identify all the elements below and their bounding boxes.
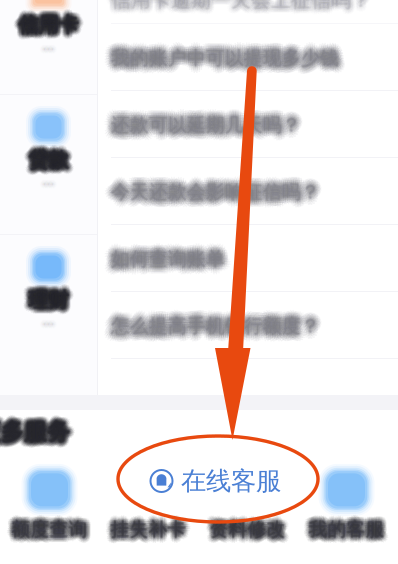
staticText: 我的客服 <box>312 517 388 540</box>
staticText: ··· <box>44 175 56 193</box>
button[interactable]: 挂失补卡 <box>99 468 198 541</box>
staticText: 信用卡逾期一天会上征信吗？ <box>114 0 374 13</box>
button[interactable]: 如何查询账单 <box>98 225 398 292</box>
staticText: 我的账户中可以提现多少钱 <box>113 41 341 64</box>
staticText: 资料修改 <box>215 517 291 540</box>
staticText: 我的账户中可以提现多少钱 <box>109 41 337 64</box>
staticText: 理财 <box>28 288 68 313</box>
button[interactable]: 在线客服 <box>128 457 302 505</box>
staticText: 额度查询 <box>11 514 87 537</box>
staticText: 如何查询账单 <box>107 253 221 276</box>
staticText: 信用卡 <box>19 18 79 42</box>
button[interactable]: 还款可以延期几天吗？ <box>98 91 398 158</box>
staticText: 贷款 <box>25 147 65 172</box>
staticText: 资料修改 <box>207 515 283 538</box>
button[interactable]: 额度查询 <box>0 468 99 541</box>
staticText: 怎么提高手机银行额度？ <box>112 313 321 336</box>
staticText: 我的客服 <box>308 516 384 539</box>
staticText: 信用卡逾期一天会上征信吗？ <box>115 0 375 11</box>
staticText: 我的客服 <box>305 519 381 542</box>
button[interactable]: 我的账户中可以提现多少钱 <box>98 24 398 91</box>
staticText: ··· <box>42 40 54 58</box>
staticText: 资料修改 <box>214 521 290 544</box>
staticText: 更多服务 <box>0 421 67 449</box>
staticText: 今天还款会影响征信吗？ <box>109 178 318 201</box>
staticText: 资料修改 <box>208 515 284 538</box>
staticText: 我的账户中可以提现多少钱 <box>108 44 336 67</box>
staticText: 挂失补卡 <box>112 515 188 538</box>
staticText: 资料修改 <box>209 515 285 538</box>
staticText: 如何查询账单 <box>118 249 232 272</box>
staticText: 怎么提高手机银行额度？ <box>112 314 321 337</box>
staticText: 理财 <box>28 286 68 311</box>
staticText: 额度查询 <box>7 515 83 538</box>
button[interactable]: 资料修改 <box>198 468 297 541</box>
staticText: 我的账户中可以提现多少钱 <box>110 45 338 68</box>
staticText: 如何查询账单 <box>107 248 221 271</box>
staticText: 如何查询账单 <box>107 242 221 265</box>
staticText: 资料修改 <box>212 516 288 539</box>
button[interactable]: 我的客服 <box>297 468 396 541</box>
button[interactable]: 信用卡 <box>0 0 97 94</box>
staticText: 还款可以延期几天吗？ <box>110 115 300 138</box>
staticText: 还款可以延期几天吗？ <box>117 117 307 140</box>
staticText: 理财 <box>31 288 71 312</box>
staticText: 如何查询账单 <box>112 247 226 270</box>
staticText: 挂失补卡 <box>108 522 184 545</box>
staticText: 额度查询 <box>8 519 84 542</box>
staticText: 额度查询 <box>13 519 89 542</box>
staticText: 怎么提高手机银行额度？ <box>113 314 322 337</box>
staticText: 怎么提高手机银行额度？ <box>113 316 322 339</box>
staticText: ··· <box>44 176 56 194</box>
staticText: 挂失补卡 <box>113 518 189 541</box>
staticText: ··· <box>45 39 57 56</box>
staticText: 贷款 <box>28 147 68 171</box>
staticText: ··· <box>39 39 51 57</box>
staticText: ··· <box>45 41 57 59</box>
staticText: 我的账户中可以提现多少钱 <box>115 43 343 66</box>
button[interactable]: 理财 <box>0 235 97 374</box>
staticText: 我的账户中可以提现多少钱 <box>107 41 335 64</box>
staticText: 我的账户中可以提现多少钱 <box>109 50 337 73</box>
button[interactable]: 信用卡逾期一天会上征信吗？ <box>98 0 398 24</box>
staticText: ··· <box>42 175 54 192</box>
staticText: 我的账户中可以提现多少钱 <box>110 53 338 76</box>
staticText: 我的客服 <box>314 517 390 540</box>
staticText: 资料修改 <box>209 516 285 538</box>
staticText: ··· <box>42 175 54 192</box>
staticText: ··· <box>44 172 56 190</box>
staticText: 资料修改 <box>206 519 282 541</box>
staticText: 还款可以延期几天吗？ <box>109 113 299 136</box>
staticText: 如何查询账单 <box>108 249 222 272</box>
button[interactable]: 今天还款会影响征信吗？ <box>98 158 398 225</box>
staticText: 我的客服 <box>313 515 389 538</box>
staticText: ··· <box>44 314 56 332</box>
staticText: 信用卡 <box>21 8 81 33</box>
staticText: 贷款 <box>28 146 68 171</box>
staticText: 我的客服 <box>309 517 385 540</box>
staticText: 今天还款会影响征信吗？ <box>108 178 317 201</box>
staticText: 信用卡逾期一天会上征信吗？ <box>107 0 367 15</box>
staticText: 信用卡逾期一天会上征信吗？ <box>108 0 368 14</box>
staticText: 挂失补卡 <box>108 518 184 541</box>
staticText: 贷款 <box>29 148 69 173</box>
staticText: 怎么提高手机银行额度？ <box>109 309 318 332</box>
staticText: ··· <box>40 312 52 329</box>
staticText: 信用卡 <box>19 12 79 37</box>
staticText: 资料修改 <box>213 519 289 542</box>
staticText: 我的客服 <box>307 514 383 537</box>
staticText: ··· <box>42 173 54 191</box>
staticText: 资料修改 <box>207 522 283 545</box>
staticText: 额度查询 <box>10 523 86 546</box>
staticText: 信用卡逾期一天会上征信吗？ <box>114 0 374 8</box>
staticText: 还款可以延期几天吗？ <box>112 116 302 139</box>
staticText: 更多服务 <box>0 418 69 446</box>
button[interactable]: 贷款 <box>0 95 97 234</box>
button[interactable]: 怎么提高手机银行额度？ <box>98 292 398 359</box>
staticText: 挂失补卡 <box>112 521 188 544</box>
staticText: 还款可以延期几天吗？ <box>115 113 305 135</box>
staticText: 贷款 <box>29 147 69 171</box>
staticText: 资料修改 <box>212 515 288 538</box>
staticText: ··· <box>42 174 54 192</box>
staticText: 今天还款会影响征信吗？ <box>114 180 323 203</box>
